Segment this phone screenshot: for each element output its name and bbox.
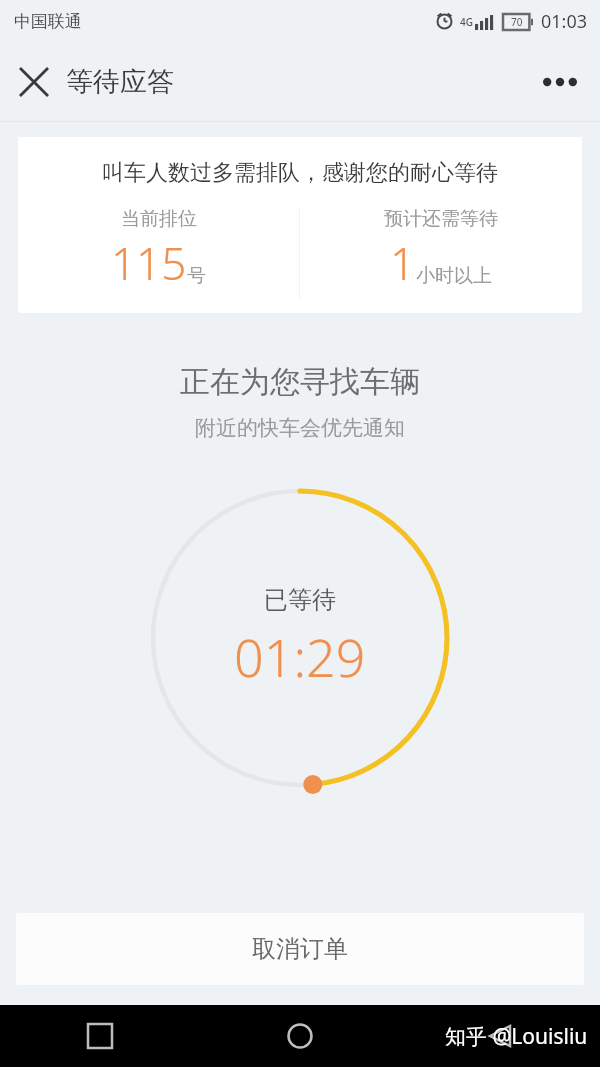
staticText: 知乎 @Louisliu xyxy=(445,1022,588,1051)
staticText: 1 xyxy=(390,233,416,293)
staticText: 号 xyxy=(187,264,206,288)
staticText: 附近的快车会优先通知 xyxy=(195,415,405,441)
staticText: 中国联通 xyxy=(14,11,82,32)
staticText: 115 xyxy=(111,233,187,293)
button[interactable]: 返回 xyxy=(400,1005,600,1067)
button[interactable]: 关闭 xyxy=(8,56,60,108)
staticText: 正在为您寻找车辆 xyxy=(180,363,420,401)
staticText: 已等待 xyxy=(264,585,336,615)
button[interactable]: 更多选项 xyxy=(532,54,588,110)
staticText: 01:29 xyxy=(234,621,366,692)
button[interactable]: 取消订单 xyxy=(16,913,584,985)
staticText: 预计还需等待 xyxy=(384,207,498,231)
staticText: 等待应答 xyxy=(66,65,174,99)
staticText: 70 xyxy=(511,15,523,29)
staticText: 4G xyxy=(460,15,473,29)
staticText: 小时以上 xyxy=(416,264,492,288)
button[interactable]: 主页 xyxy=(200,1005,400,1067)
staticText: 01:03 xyxy=(541,9,588,34)
staticText: 当前排位 xyxy=(121,207,197,231)
button[interactable]: 最近任务 xyxy=(0,1005,200,1067)
staticText: 取消订单 xyxy=(252,934,348,964)
staticText: 叫车人数过多需排队，感谢您的耐心等待 xyxy=(102,159,498,187)
